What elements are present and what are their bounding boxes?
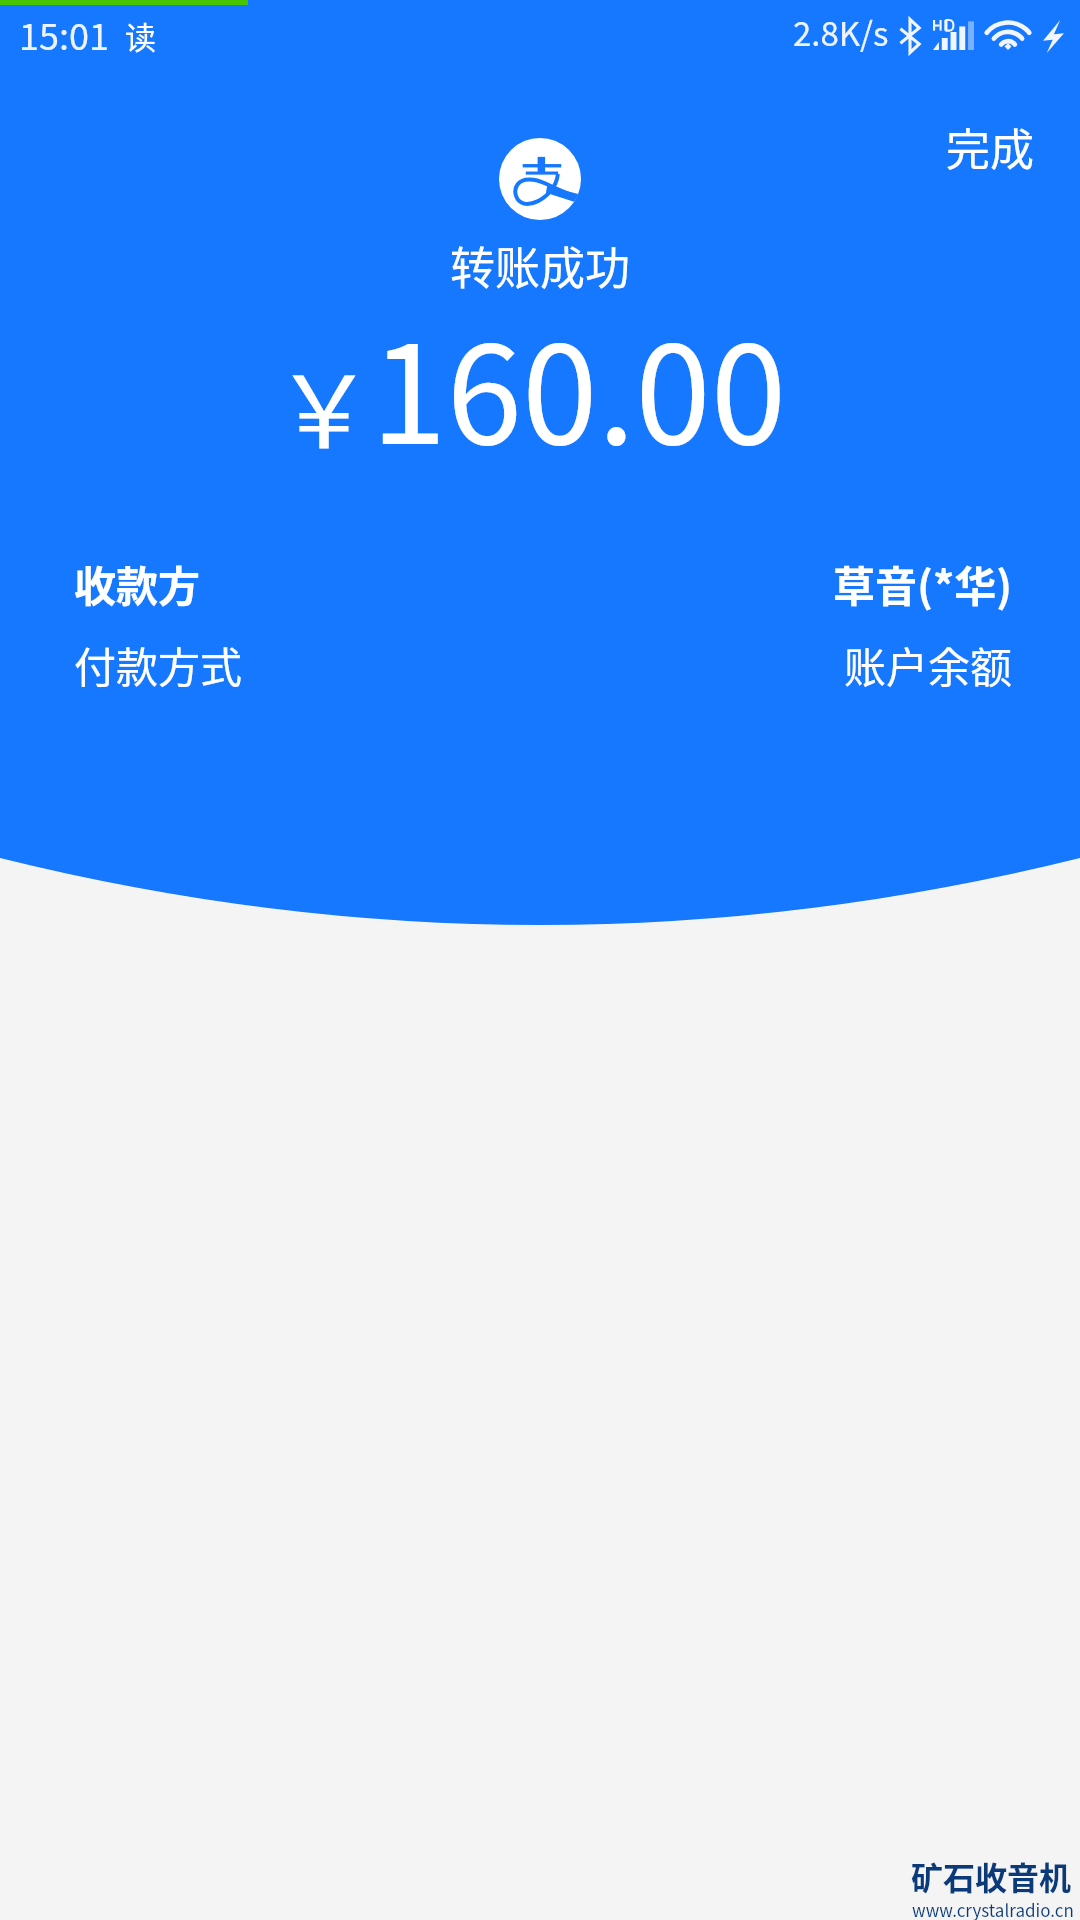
staticText: 账户余额 [844,634,1013,695]
other: Alipay [499,138,581,220]
staticText: 矿石收音机 [911,1853,1072,1899]
other: Bluetooth [900,19,920,53]
other: Wi-Fi [987,20,1029,50]
staticText: 完成 [946,115,1034,179]
button[interactable]: 完成 [922,95,1058,199]
staticText: 付款方式 [74,634,243,695]
staticText: 草音(*华) [833,553,1013,614]
staticText: 读 [125,13,156,58]
other: Mobile signal [933,20,974,50]
staticText: 2.8K/s [793,8,889,56]
staticText: 收款方 [74,553,201,614]
staticText: ￥ [274,332,374,477]
staticText: 160.00 [371,286,787,483]
staticText: 转账成功 [450,233,631,298]
other: Charging [1043,20,1064,53]
staticText: 15:01 [19,8,109,60]
staticText: www.crystalradio.cn [912,1897,1074,1920]
